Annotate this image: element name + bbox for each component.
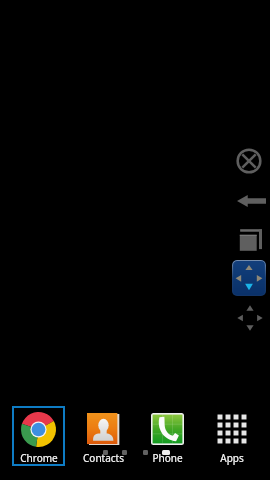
button[interactable]: Move — [236, 304, 264, 332]
staticText: Chrome — [20, 451, 58, 465]
button[interactable]: Recent apps — [239, 229, 262, 251]
button[interactable]: Back — [237, 195, 266, 207]
button[interactable]: Phone — [137, 406, 197, 466]
button[interactable]: Apps — [202, 406, 262, 466]
button[interactable]: Chrome — [12, 406, 65, 466]
button[interactable]: Contacts — [73, 406, 133, 466]
staticText: Apps — [220, 451, 244, 465]
button[interactable]: D-pad — [232, 260, 266, 296]
staticText: Phone — [152, 451, 183, 465]
button[interactable]: Close — [236, 148, 262, 174]
staticText: Contacts — [83, 451, 124, 465]
